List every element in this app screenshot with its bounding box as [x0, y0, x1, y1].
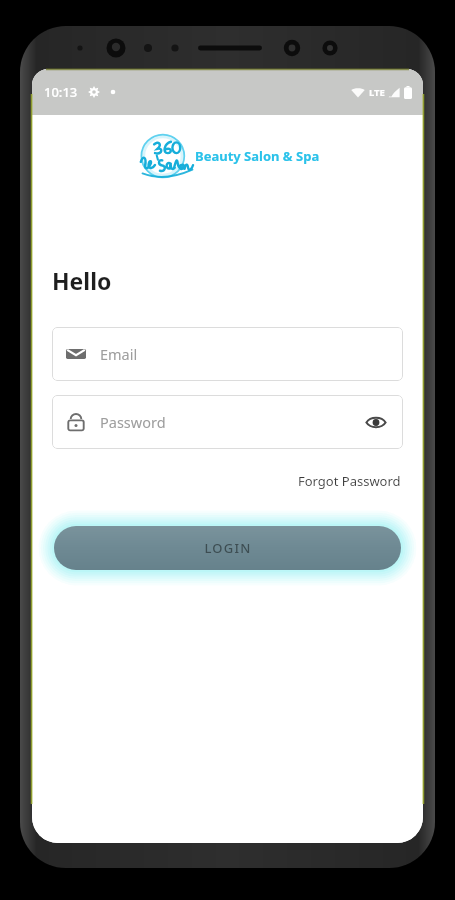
button[interactable]: Password	[52, 395, 403, 449]
staticText: 10:13	[44, 83, 78, 101]
staticText: Password	[100, 412, 166, 432]
button[interactable]: LOGIN	[54, 526, 401, 570]
staticText: Beauty Salon & Spa	[195, 147, 320, 165]
button[interactable]: Forgot Password	[296, 469, 403, 493]
staticText: LOGIN	[204, 539, 252, 557]
staticText: Hello	[52, 265, 112, 296]
button[interactable]: Show password	[363, 409, 389, 435]
staticText: LTE	[369, 86, 385, 99]
button[interactable]: Email	[52, 327, 403, 381]
staticText: Email	[100, 344, 138, 364]
staticText: Forgot Password	[298, 472, 401, 490]
